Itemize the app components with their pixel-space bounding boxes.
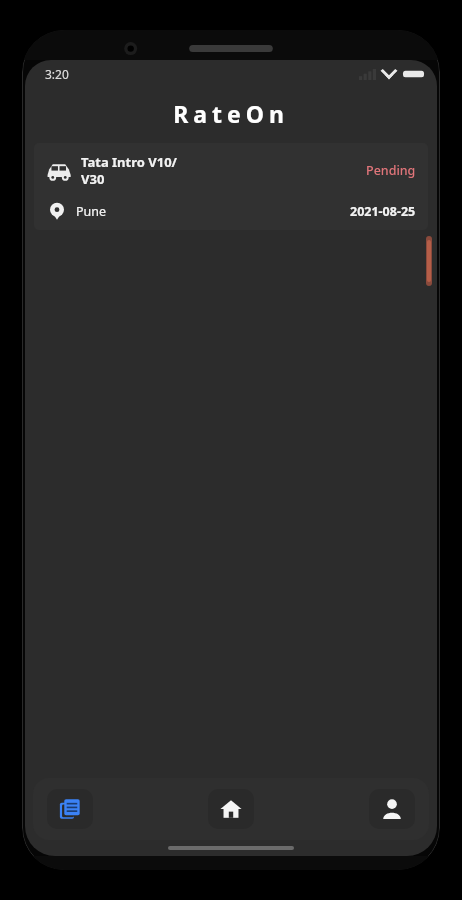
staticText: Pune xyxy=(76,203,350,220)
button[interactable]: Profile xyxy=(369,789,415,829)
staticText: RateOn xyxy=(173,98,289,129)
button[interactable]: Tata Intro V10/ V30 xyxy=(34,143,428,230)
staticText: Pending xyxy=(366,162,416,179)
button[interactable]: Orders xyxy=(47,789,93,829)
staticText: Tata Intro V10/ V30 xyxy=(81,153,366,188)
button[interactable]: Home xyxy=(208,789,254,829)
staticText: 2021-08-25 xyxy=(350,203,416,220)
staticText: 3:20 xyxy=(45,66,69,82)
